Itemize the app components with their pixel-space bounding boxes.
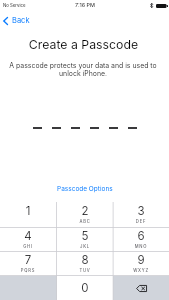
staticText: ABC xyxy=(57,219,113,224)
staticText: JKL xyxy=(57,244,113,249)
button[interactable]: 8 xyxy=(57,252,113,276)
staticText: WXYZ xyxy=(113,268,169,273)
button[interactable]: 7 xyxy=(0,252,56,276)
button[interactable]: 9 xyxy=(113,252,169,276)
staticText: 6 xyxy=(113,229,169,243)
staticText: 2 xyxy=(57,204,113,218)
staticText: 4 xyxy=(0,229,56,243)
button[interactable]: 1 xyxy=(0,203,56,228)
staticText: TUV xyxy=(57,268,113,273)
button[interactable]: 3 xyxy=(113,203,169,228)
staticText: 5 xyxy=(57,229,113,243)
button[interactable]: Passcode Options xyxy=(0,180,169,198)
staticText: PQRS xyxy=(0,268,56,273)
staticText: Back xyxy=(12,16,30,25)
staticText: DEF xyxy=(113,219,169,224)
staticText: Create a Passcode xyxy=(0,37,168,52)
staticText: MNO xyxy=(113,244,169,249)
button[interactable]: 0 xyxy=(57,276,113,300)
staticText: No Service xyxy=(3,3,26,8)
staticText: Passcode Options xyxy=(57,185,113,193)
button[interactable]: 2 xyxy=(57,203,113,228)
staticText: 8 xyxy=(57,253,113,267)
staticText: GHI xyxy=(0,244,56,249)
staticText: 3 xyxy=(113,204,169,218)
staticText: 7:16 PM xyxy=(75,2,95,9)
button[interactable]: 6 xyxy=(113,228,169,252)
button[interactable]: Delete xyxy=(113,276,169,300)
staticText: 0 xyxy=(57,281,113,295)
staticText: A passcode protects your data and is use… xyxy=(7,61,159,77)
staticText: 1 xyxy=(0,204,56,218)
button[interactable]: 5 xyxy=(57,228,113,252)
button[interactable]: Back xyxy=(2,14,31,27)
staticText: 7 xyxy=(0,253,56,267)
button[interactable]: 4 xyxy=(0,228,56,252)
staticText: 9 xyxy=(113,253,169,267)
